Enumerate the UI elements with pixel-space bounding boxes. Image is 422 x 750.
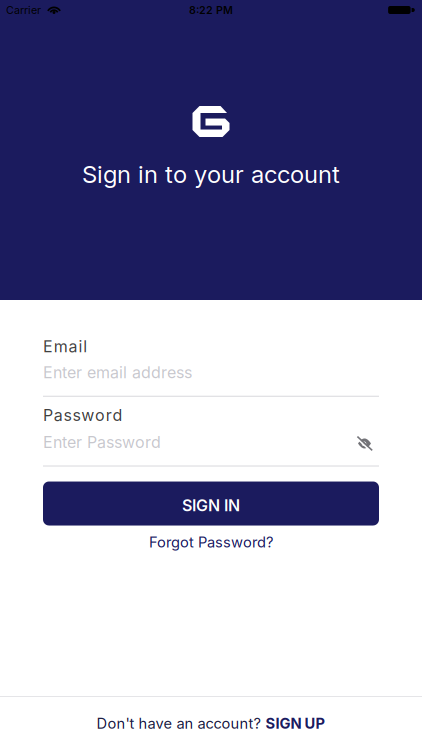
staticText: SIGN IN <box>182 496 240 515</box>
staticText: SIGN UP <box>265 715 325 732</box>
button[interactable] <box>357 435 379 450</box>
staticText: Enter email address <box>43 363 192 382</box>
staticText: Carrier <box>6 4 41 16</box>
staticText: Forgot Password? <box>149 533 273 551</box>
button[interactable]: Forgot Password? <box>149 533 273 551</box>
staticText: Sign in to your account <box>82 160 340 188</box>
button[interactable]: Don't have an account? <box>0 697 422 750</box>
staticText: Don't have an account? <box>96 715 260 732</box>
staticText: Password <box>43 406 123 425</box>
button[interactable]: SIGN IN <box>43 481 379 525</box>
staticText: 8:22 PM <box>189 4 233 16</box>
staticText: Enter Password <box>43 433 161 451</box>
staticText: Email <box>43 337 87 356</box>
